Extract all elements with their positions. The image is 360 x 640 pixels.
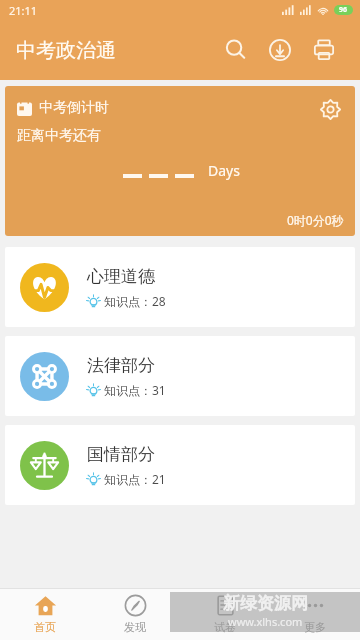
button[interactable]: 法律部分 bbox=[5, 336, 355, 416]
staticText: 知识点：31 bbox=[104, 382, 166, 398]
button[interactable]: 国情部分 bbox=[5, 425, 355, 505]
staticText: 发现 bbox=[124, 620, 146, 634]
staticText: 国情部分 bbox=[87, 444, 155, 465]
staticText: 试卷 bbox=[214, 620, 236, 634]
staticText: 法律部分 bbox=[87, 355, 155, 376]
staticText: Days bbox=[208, 161, 240, 180]
button[interactable]: Print bbox=[302, 28, 346, 72]
button[interactable]: 发现 bbox=[90, 588, 180, 640]
staticText: 更多 bbox=[304, 620, 326, 634]
staticText: 首页 bbox=[34, 620, 56, 634]
staticText: www.xlhs.com bbox=[228, 614, 303, 629]
button[interactable]: Settings bbox=[313, 92, 347, 126]
button[interactable]: Search bbox=[214, 28, 258, 72]
staticText: 知识点：21 bbox=[104, 471, 166, 487]
button[interactable]: 中考倒计时 bbox=[5, 86, 355, 236]
button[interactable]: Download bbox=[258, 28, 302, 72]
staticText: 中考政治通 bbox=[16, 38, 116, 63]
button[interactable]: 更多 bbox=[270, 588, 360, 640]
staticText: 中考倒计时 bbox=[39, 99, 109, 117]
staticText: 0时0分0秒 bbox=[287, 212, 344, 228]
staticText: 新绿资源网 bbox=[223, 593, 308, 614]
button[interactable]: 首页 bbox=[0, 588, 90, 640]
button[interactable]: 试卷 bbox=[180, 588, 270, 640]
staticText: 96 bbox=[339, 5, 348, 15]
staticText: 距离中考还有 bbox=[17, 127, 101, 145]
staticText: 21:11 bbox=[9, 3, 38, 18]
button[interactable]: 心理道德 bbox=[5, 247, 355, 327]
staticText: 知识点：28 bbox=[104, 293, 166, 309]
staticText: 心理道德 bbox=[87, 266, 155, 287]
